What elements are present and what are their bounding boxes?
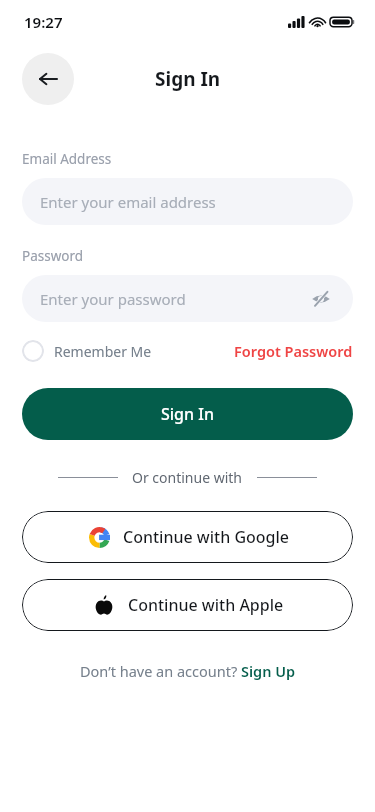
button[interactable]: Back — [22, 53, 74, 105]
button[interactable]: Don’t have an account? Sign Up — [22, 661, 353, 681]
staticText: Enter your email address — [40, 192, 216, 212]
staticText: Remember Me — [54, 342, 152, 361]
button[interactable]: Enter your email address — [22, 178, 353, 225]
staticText: Sign In — [161, 403, 214, 425]
staticText: Continue with Apple — [128, 594, 284, 616]
staticText: Sign In — [155, 66, 221, 92]
button[interactable]: Continue with Google — [22, 511, 353, 563]
staticText: Enter your password — [40, 289, 186, 309]
button[interactable]: Remember Me — [22, 340, 152, 362]
staticText: Or continue with — [132, 468, 243, 487]
button[interactable]: Sign In — [22, 388, 353, 440]
staticText: Forgot Password — [234, 341, 353, 361]
staticText: 19:27 — [24, 12, 63, 32]
staticText: Email Address — [22, 150, 112, 168]
button[interactable]: Show password — [307, 285, 335, 313]
staticText: Password — [22, 247, 84, 265]
button[interactable]: Forgot Password — [234, 341, 353, 361]
staticText: Continue with Google — [123, 526, 289, 548]
button[interactable]: Enter your password — [22, 275, 353, 322]
staticText: Don’t have an account? Sign Up — [80, 661, 296, 681]
button[interactable]: Continue with Apple — [22, 579, 353, 631]
